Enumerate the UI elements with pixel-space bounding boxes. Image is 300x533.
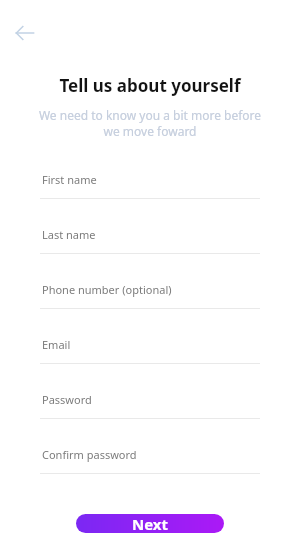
staticText: Phone number (optional): [42, 282, 172, 297]
staticText: Password: [42, 392, 92, 407]
button[interactable]: Back: [8, 16, 41, 49]
button[interactable]: Phone number (optional): [40, 282, 260, 309]
staticText: Last name: [42, 227, 96, 242]
staticText: We need to know you a bit more before we…: [36, 107, 264, 140]
button[interactable]: Confirm password: [40, 447, 260, 474]
button[interactable]: Next: [76, 514, 224, 533]
button[interactable]: Password: [40, 392, 260, 419]
staticText: Tell us about yourself: [59, 74, 241, 97]
staticText: Next: [132, 514, 169, 533]
staticText: First name: [42, 172, 97, 187]
staticText: Email: [42, 337, 71, 352]
staticText: Confirm password: [42, 447, 137, 462]
button[interactable]: Email: [40, 337, 260, 364]
button[interactable]: Last name: [40, 227, 260, 254]
button[interactable]: First name: [40, 172, 260, 199]
